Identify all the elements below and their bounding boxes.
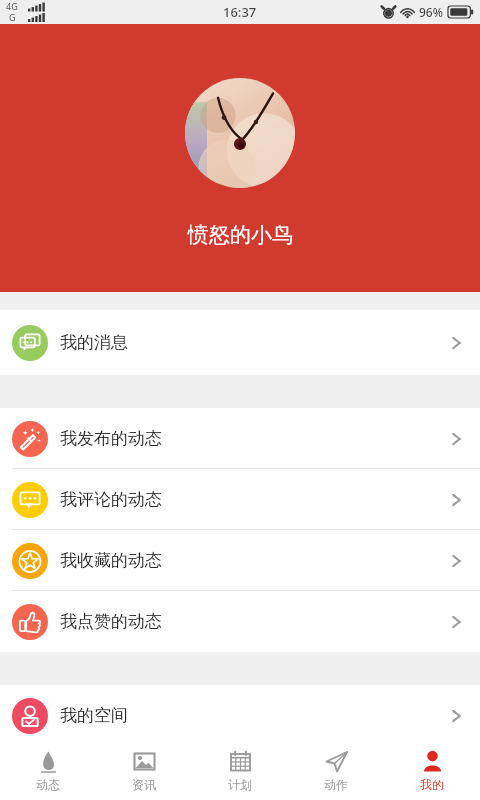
staticText: 4G bbox=[6, 0, 18, 12]
staticText: 我点赞的动态 bbox=[60, 611, 162, 632]
staticText: 我的消息 bbox=[60, 332, 128, 353]
button[interactable]: Profile photo bbox=[185, 78, 295, 188]
staticText: 计划 bbox=[228, 777, 252, 792]
button[interactable]: 我的 bbox=[384, 740, 480, 800]
staticText: 我发布的动态 bbox=[60, 428, 162, 449]
staticText: 动态 bbox=[36, 777, 60, 792]
staticText: 我的 bbox=[420, 777, 444, 792]
staticText: G bbox=[9, 11, 16, 23]
staticText: 资讯 bbox=[132, 777, 156, 792]
staticText: 动作 bbox=[324, 777, 348, 792]
staticText: 愤怒的小鸟 bbox=[188, 222, 293, 248]
button[interactable]: 我的消息 bbox=[0, 310, 480, 375]
button[interactable]: 我的空间 bbox=[0, 685, 480, 746]
button[interactable]: 我点赞的动态 bbox=[0, 591, 480, 652]
staticText: 我收藏的动态 bbox=[60, 550, 162, 571]
button[interactable]: 动态 bbox=[0, 740, 96, 800]
button[interactable]: 资讯 bbox=[96, 740, 192, 800]
staticText: 我的空间 bbox=[60, 705, 128, 726]
button[interactable]: 我评论的动态 bbox=[0, 469, 480, 530]
button[interactable]: 我收藏的动态 bbox=[0, 530, 480, 591]
staticText: 96% bbox=[419, 4, 443, 20]
staticText: 16:37 bbox=[223, 3, 257, 21]
button[interactable]: 计划 bbox=[192, 740, 288, 800]
staticText: 我评论的动态 bbox=[60, 489, 162, 510]
button[interactable]: 我发布的动态 bbox=[0, 408, 480, 469]
button[interactable]: 动作 bbox=[288, 740, 384, 800]
